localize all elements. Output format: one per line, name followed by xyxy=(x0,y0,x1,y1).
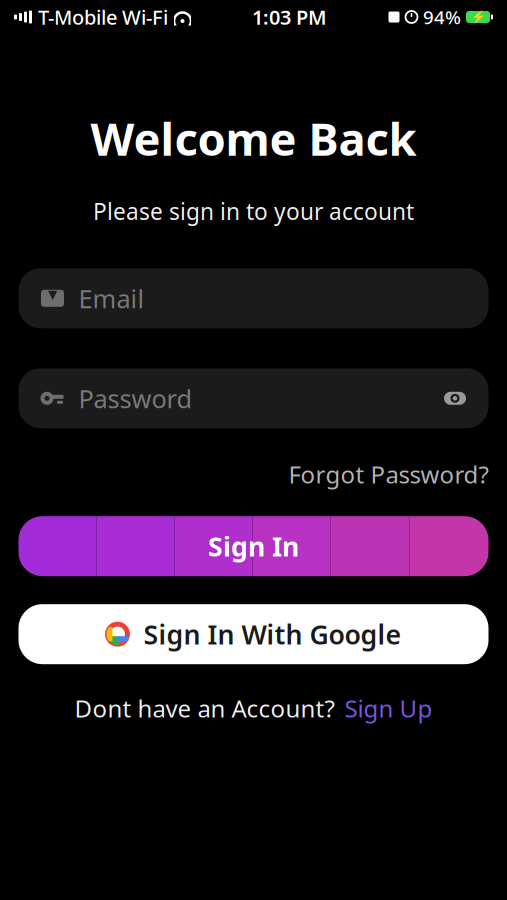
staticText: 94% xyxy=(423,5,461,29)
staticText: Sign Up xyxy=(344,692,432,724)
staticText: Sign In xyxy=(208,528,299,564)
staticText: Dont have an Account? xyxy=(74,692,334,724)
staticText: ▼ xyxy=(48,287,57,301)
staticText: Forgot Password? xyxy=(288,458,488,490)
button[interactable]: Email xyxy=(18,268,488,328)
staticText: Email xyxy=(78,281,144,315)
button[interactable]: Password xyxy=(18,368,488,428)
staticText: Password xyxy=(78,381,192,415)
button[interactable]: Sign In xyxy=(18,516,488,576)
button[interactable]: Sign In With Google xyxy=(18,604,488,664)
staticText: 1:03 PM xyxy=(252,4,327,30)
staticText: Sign In With Google xyxy=(143,616,401,652)
staticText: ⚡ xyxy=(470,10,485,24)
button[interactable]: Sign Up xyxy=(344,692,432,724)
staticText: Welcome Back xyxy=(90,108,416,168)
staticText: Please sign in to your account xyxy=(93,196,414,226)
button[interactable]: Forgot Password? xyxy=(288,458,488,490)
staticText: T-Mobile Wi-Fi xyxy=(38,4,168,30)
